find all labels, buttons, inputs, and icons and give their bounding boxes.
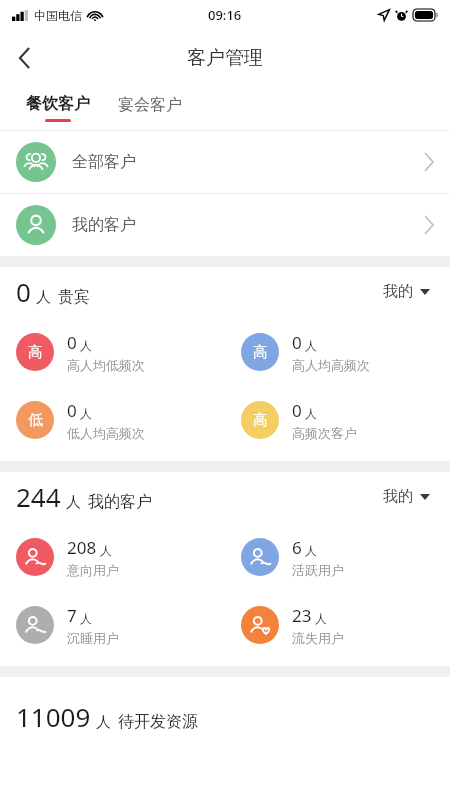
staticText: 244 xyxy=(16,479,61,514)
staticText: 我的客户 xyxy=(88,492,152,512)
button[interactable]: 高 xyxy=(225,327,450,377)
button[interactable]: 208 xyxy=(0,532,225,582)
staticText: 人 xyxy=(36,288,51,307)
button[interactable]: 我的客户 xyxy=(0,194,450,256)
staticText: 人 xyxy=(305,338,317,353)
staticText: 23 xyxy=(292,604,312,627)
staticText: 贵宾 xyxy=(58,287,90,307)
staticText: 0 xyxy=(292,331,302,354)
staticText: 人 xyxy=(96,713,111,732)
button[interactable]: 高 xyxy=(225,395,450,445)
staticText: 0 xyxy=(292,399,302,422)
staticText: 我的 xyxy=(383,487,413,506)
staticText: 中国电信 xyxy=(34,8,82,23)
staticText: 人 xyxy=(80,338,92,353)
staticText: 待开发资源 xyxy=(118,712,198,732)
staticText: 高 xyxy=(253,343,268,362)
staticText: 0 xyxy=(16,274,31,309)
button[interactable]: 餐饮客户 xyxy=(26,94,90,122)
staticText: 活跃用户 xyxy=(292,562,344,578)
staticText: 6 xyxy=(292,536,302,559)
button[interactable]: 6 xyxy=(225,532,450,582)
staticText: 人 xyxy=(80,406,92,421)
staticText: 全部客户 xyxy=(72,152,136,172)
staticText: 人 xyxy=(100,543,112,558)
staticText: 7 xyxy=(67,604,77,627)
staticText: 人 xyxy=(66,493,81,512)
staticText: 人 xyxy=(315,611,327,626)
staticText: 人 xyxy=(305,543,317,558)
staticText: 人 xyxy=(80,611,92,626)
staticText: 我的客户 xyxy=(72,215,136,235)
button[interactable]: 我的 xyxy=(379,276,434,307)
staticText: 宴会客户 xyxy=(118,95,182,115)
button[interactable]: 全部客户 xyxy=(0,131,450,193)
staticText: 低人均高频次 xyxy=(67,425,145,441)
button[interactable]: 23 xyxy=(225,600,450,650)
staticText: 沉睡用户 xyxy=(67,630,119,646)
staticText: 流失用户 xyxy=(292,630,344,646)
staticText: 高人均低频次 xyxy=(67,357,145,373)
staticText: 0 xyxy=(67,399,77,422)
staticText: 意向用户 xyxy=(67,562,119,578)
button[interactable]: 低 xyxy=(0,395,225,445)
staticText: 09:16 xyxy=(208,6,242,24)
staticText: 低 xyxy=(28,411,43,430)
staticText: 高 xyxy=(253,411,268,430)
button[interactable]: 我的 xyxy=(379,481,434,512)
button[interactable]: Back xyxy=(0,34,48,82)
button[interactable]: 高 xyxy=(0,327,225,377)
staticText: 高人均高频次 xyxy=(292,357,370,373)
staticText: 208 xyxy=(67,536,97,559)
button[interactable]: 宴会客户 xyxy=(118,95,182,122)
staticText: 我的 xyxy=(383,282,413,301)
staticText: 高 xyxy=(28,343,43,362)
staticText: 高频次客户 xyxy=(292,425,357,441)
button[interactable]: 7 xyxy=(0,600,225,650)
staticText: 餐饮客户 xyxy=(26,94,90,114)
staticText: 11009 xyxy=(16,699,91,734)
staticText: 人 xyxy=(305,406,317,421)
staticText: 客户管理 xyxy=(187,46,263,70)
staticText: 0 xyxy=(67,331,77,354)
